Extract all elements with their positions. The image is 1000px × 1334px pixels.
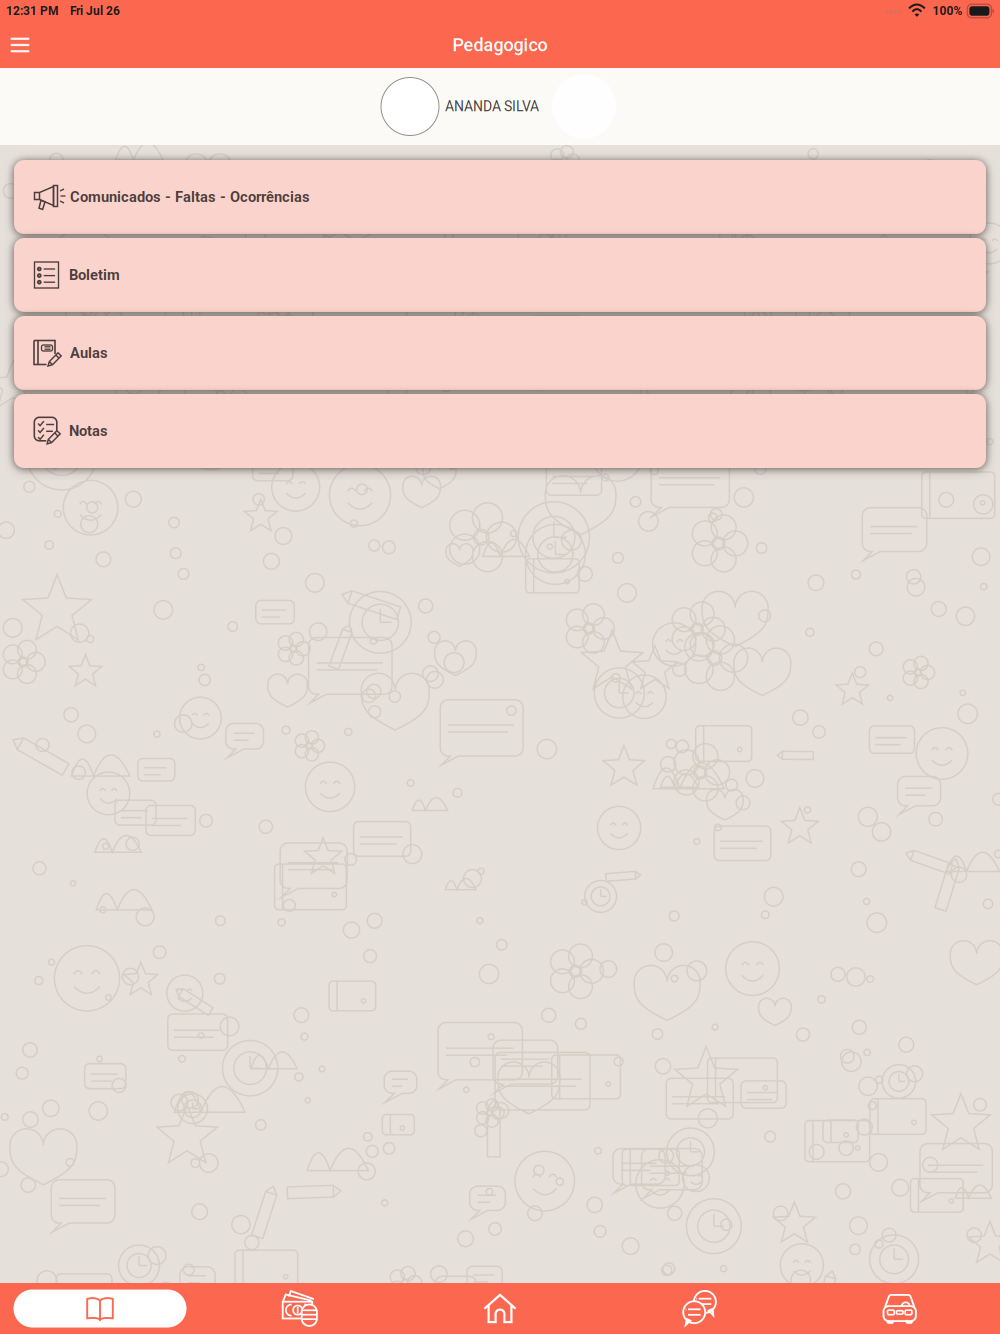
staticText: Notas [69,422,108,440]
button[interactable]: Notas [14,394,986,468]
staticText: 100% [932,4,962,18]
button[interactable]: Financeiro [200,1283,400,1334]
button[interactable]: Transporte [800,1283,1000,1334]
staticText: ANANDA SILVA [445,98,539,115]
button[interactable]: Boletim [14,238,986,312]
staticText: Comunicados - Faltas - Ocorrências [70,188,310,206]
staticText: Pedagogico [452,34,547,56]
staticText: Fri Jul 26 [70,4,120,18]
button[interactable]: Aulas [14,316,986,390]
staticText: Boletim [69,266,120,284]
button[interactable]: Início [400,1283,600,1334]
button[interactable]: Agenda [0,1283,200,1334]
button[interactable]: Mensagens [600,1283,800,1334]
staticText: 12:31 PM [6,4,59,18]
button[interactable]: Menu [0,23,40,67]
staticText: Aulas [70,344,108,362]
button[interactable]: Comunicados - Faltas - Ocorrências [14,160,986,234]
